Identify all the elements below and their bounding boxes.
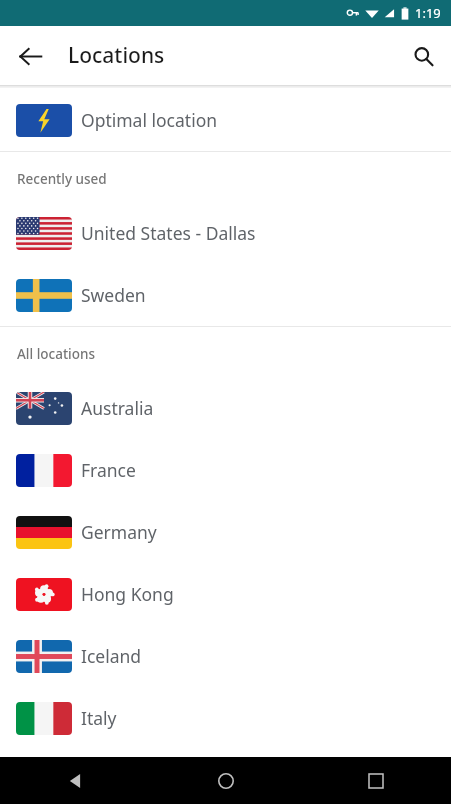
staticText: Optimal location <box>81 108 218 132</box>
button[interactable]: Hong Kong <box>0 563 451 625</box>
button[interactable]: Search <box>401 34 445 78</box>
button[interactable]: Australia <box>0 377 451 439</box>
staticText: Italy <box>81 706 117 730</box>
button[interactable]: Sweden <box>0 264 451 326</box>
button[interactable]: Optimal location <box>0 89 451 151</box>
staticText: Germany <box>81 520 157 544</box>
button[interactable]: Germany <box>0 501 451 563</box>
staticText: 1:19 <box>415 4 441 22</box>
staticText: France <box>81 458 136 482</box>
button[interactable]: United States - Dallas <box>0 202 451 264</box>
staticText: Iceland <box>81 644 142 668</box>
button[interactable]: Recent apps <box>352 757 400 804</box>
button[interactable]: France <box>0 439 451 501</box>
staticText: Locations <box>68 41 165 70</box>
button[interactable]: Iceland <box>0 625 451 687</box>
staticText: United States - Dallas <box>81 221 256 245</box>
button[interactable]: Back <box>51 757 99 804</box>
staticText: Hong Kong <box>81 582 174 606</box>
staticText: All locations <box>17 345 95 363</box>
staticText: Australia <box>81 396 154 420</box>
button[interactable]: Home <box>202 757 250 804</box>
staticText: Sweden <box>81 283 146 307</box>
staticText: Recently used <box>17 170 107 188</box>
button[interactable]: Back <box>8 34 52 78</box>
button[interactable]: Italy <box>0 687 451 749</box>
